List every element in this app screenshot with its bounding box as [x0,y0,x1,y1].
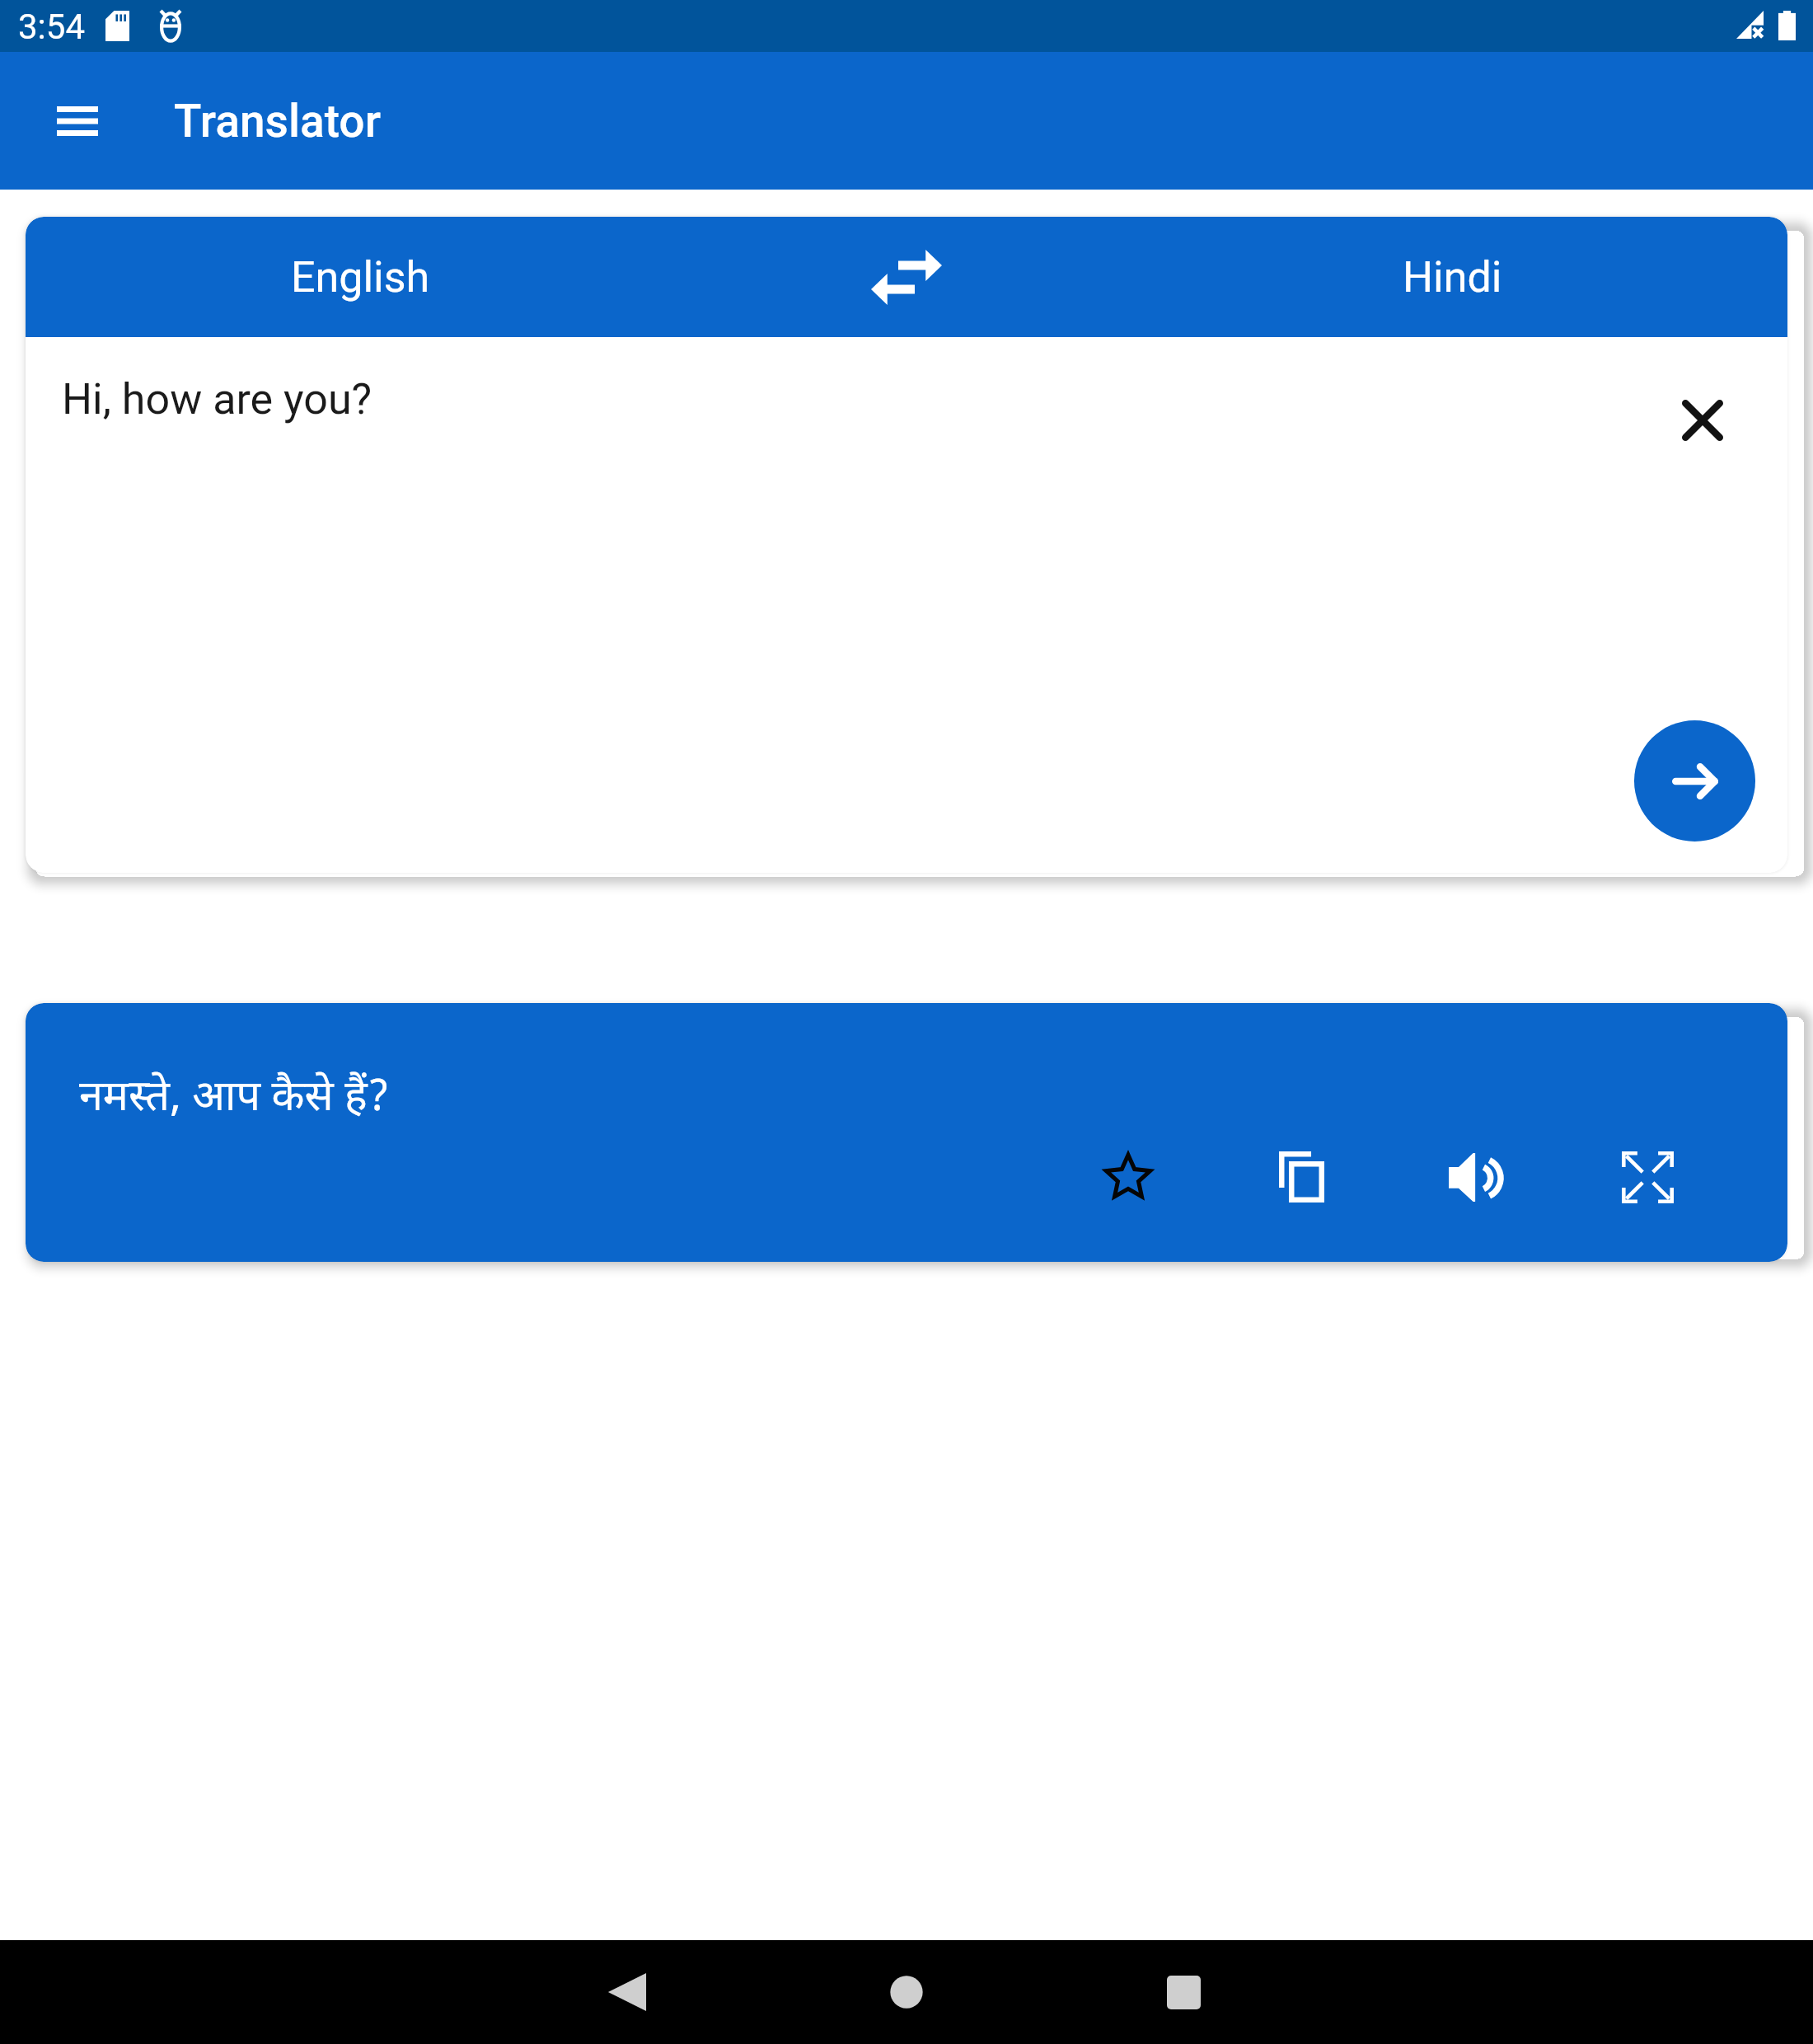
button[interactable]: Clear text [1661,379,1744,462]
staticText: Hi, how are you? [62,374,372,424]
staticText: नमस्ते, आप कैसे हैं? [79,1071,390,1127]
button[interactable]: Back [575,1940,679,2044]
button[interactable]: Home [855,1940,958,2044]
staticText: Translator [174,95,381,148]
button[interactable]: Swap languages [696,217,1117,337]
button[interactable]: Listen [1388,1132,1561,1222]
button[interactable]: Hindi [1117,217,1787,337]
staticText: Hindi [1403,252,1502,302]
button[interactable]: Translate [1634,720,1755,842]
button[interactable]: Fullscreen [1561,1132,1734,1222]
button[interactable]: Add to favorites [1042,1132,1215,1222]
button[interactable]: English [26,217,696,337]
staticText: 3:54 [18,7,85,47]
button[interactable]: Open navigation menu [20,63,135,179]
button[interactable]: Copy translation [1215,1132,1388,1222]
button[interactable]: Recent apps [1131,1940,1235,2044]
staticText: English [291,252,430,302]
